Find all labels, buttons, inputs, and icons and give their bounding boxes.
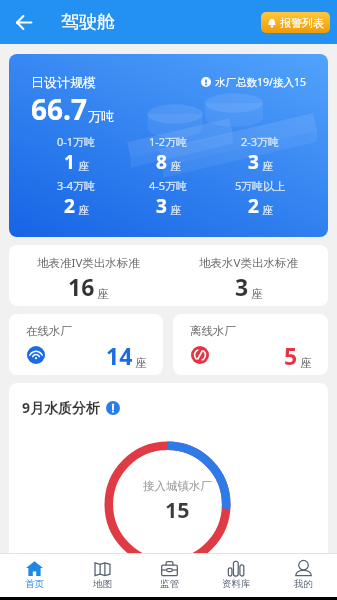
staticText: 水厂总数19/接入15 xyxy=(215,75,306,89)
staticText: 座 xyxy=(78,203,89,217)
button[interactable]: 地图 xyxy=(68,554,136,597)
staticText: 3 xyxy=(156,193,167,219)
staticText: 0-1万吨 xyxy=(57,134,96,149)
button[interactable]: 我的 xyxy=(270,554,337,597)
staticText: 地表水V类出水标准 xyxy=(199,255,298,271)
staticText: 座 xyxy=(251,287,263,301)
staticText: 66.7 xyxy=(31,90,87,128)
staticText: 座 xyxy=(78,159,89,173)
staticText: 座 xyxy=(262,159,273,173)
button[interactable]: 报警列表 xyxy=(261,12,330,33)
button[interactable]: 离线水厂 xyxy=(173,314,328,375)
button[interactable]: 地表准IV类出水标准 xyxy=(9,245,168,306)
button[interactable]: 地表水V类出水标准 xyxy=(168,245,328,306)
staticText: 9月水质分析 xyxy=(22,398,101,417)
staticText: 资料库 xyxy=(222,578,251,590)
staticText: 离线水厂 xyxy=(190,324,236,338)
staticText: 3 xyxy=(248,149,259,175)
staticText: 万吨 xyxy=(88,108,114,124)
staticText: 监管 xyxy=(160,578,179,590)
staticText: 座 xyxy=(135,356,147,370)
staticText: 14 xyxy=(106,340,133,371)
staticText: 座 xyxy=(97,287,109,301)
staticText: 2-3万吨 xyxy=(241,134,280,149)
staticText: 座 xyxy=(170,159,181,173)
staticText: 地表准IV类出水标准 xyxy=(37,255,140,271)
staticText: 首页 xyxy=(25,578,44,590)
staticText: 在线水厂 xyxy=(26,324,72,338)
staticText: 座 xyxy=(262,203,273,217)
staticText: 报警列表 xyxy=(280,16,324,30)
staticText: 4-5万吨 xyxy=(149,178,188,193)
staticText: 座 xyxy=(170,203,181,217)
button[interactable]: 首页 xyxy=(0,554,68,597)
staticText: 5万吨以上 xyxy=(235,178,286,193)
button[interactable]: 资料库 xyxy=(203,554,270,597)
staticText: 8 xyxy=(156,149,167,175)
button[interactable]: 日设计规模 xyxy=(9,54,328,237)
button[interactable]: 监管 xyxy=(136,554,203,597)
staticText: 驾驶舱 xyxy=(61,11,115,34)
staticText: 3-4万吨 xyxy=(57,178,96,193)
staticText: 1 xyxy=(64,149,75,175)
staticText: 1-2万吨 xyxy=(149,134,188,149)
staticText: 15 xyxy=(165,495,190,524)
staticText: 2 xyxy=(64,193,75,219)
button[interactable]: Back xyxy=(10,8,38,36)
staticText: 地图 xyxy=(93,578,112,590)
staticText: 2 xyxy=(248,193,259,219)
staticText: 5 xyxy=(284,340,298,371)
staticText: 接入城镇水厂 xyxy=(143,479,212,493)
button[interactable]: 在线水厂 xyxy=(9,314,163,375)
staticText: 16 xyxy=(68,271,95,302)
staticText: 座 xyxy=(300,356,312,370)
staticText: 3 xyxy=(235,271,249,302)
staticText: 我的 xyxy=(294,578,313,590)
staticText: 日设计规模 xyxy=(31,74,96,90)
